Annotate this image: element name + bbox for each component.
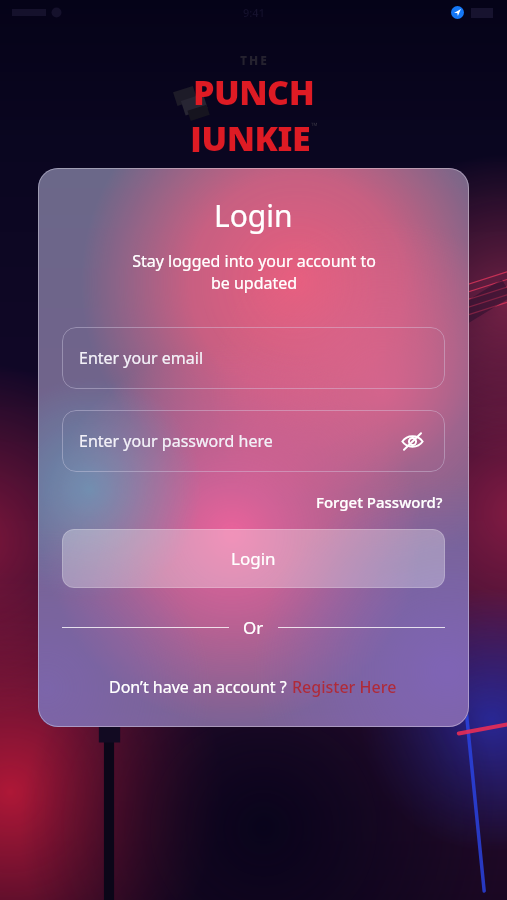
- button[interactable]: Enter your password here: [62, 410, 445, 472]
- staticText: PUNCH: [193, 69, 315, 115]
- staticText: 9:41: [243, 5, 265, 20]
- staticText: THE: [240, 52, 269, 68]
- staticText: Forget Password?: [316, 492, 443, 512]
- button[interactable]: Login: [62, 529, 445, 588]
- staticText: Stay logged into your account to be upda…: [132, 250, 376, 294]
- staticText: Login: [214, 195, 293, 236]
- button[interactable]: Show password: [397, 426, 427, 456]
- staticText: Enter your password here: [79, 430, 397, 452]
- staticText: ™: [311, 119, 318, 131]
- staticText: JUNKIE: [190, 115, 311, 152]
- staticText: Enter your email: [79, 347, 427, 369]
- staticText: Or: [243, 616, 264, 639]
- staticText: Don’t have an account ?: [109, 676, 291, 698]
- button[interactable]: Enter your email: [62, 327, 445, 389]
- button[interactable]: Forget Password?: [314, 489, 445, 515]
- button[interactable]: Register Here: [291, 674, 398, 700]
- staticText: Register Here: [292, 676, 397, 698]
- staticText: Login: [231, 547, 276, 570]
